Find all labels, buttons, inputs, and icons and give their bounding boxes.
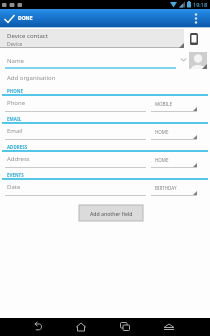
button[interactable] bbox=[160, 318, 178, 336]
button[interactable] bbox=[29, 318, 47, 336]
staticText: BIRTHDAY bbox=[155, 185, 177, 191]
staticText: MOBILE bbox=[155, 101, 172, 107]
staticText: Add another field bbox=[90, 210, 133, 217]
button[interactable]: BIRTHDAY bbox=[151, 182, 197, 196]
staticText: ADDRESS bbox=[7, 144, 28, 150]
staticText: DONE bbox=[18, 15, 33, 22]
button[interactable]: Address bbox=[7, 155, 30, 163]
staticText: 19:18 bbox=[193, 1, 208, 8]
staticText: HOME bbox=[155, 157, 169, 163]
button[interactable] bbox=[190, 33, 198, 45]
button[interactable]: Email bbox=[7, 127, 23, 135]
staticText: Device bbox=[7, 41, 23, 48]
button[interactable]: Add organisation bbox=[7, 74, 56, 82]
button[interactable]: HOME bbox=[151, 154, 197, 168]
button[interactable]: DONE bbox=[0, 9, 60, 28]
button[interactable] bbox=[188, 9, 210, 28]
staticText: Device contact bbox=[7, 32, 48, 40]
button[interactable]: Add another field bbox=[79, 205, 143, 221]
button[interactable]: MOBILE bbox=[151, 98, 197, 112]
button[interactable]: Device contact bbox=[0, 29, 184, 48]
button[interactable] bbox=[72, 318, 90, 336]
button[interactable]: HOME bbox=[151, 126, 197, 140]
button[interactable]: Phone bbox=[7, 99, 26, 107]
button[interactable] bbox=[189, 52, 207, 69]
button[interactable] bbox=[116, 318, 134, 336]
staticText: PHONE bbox=[7, 88, 23, 94]
staticText: Name bbox=[7, 57, 24, 65]
staticText: EVENTS bbox=[7, 172, 24, 178]
staticText: EMAIL bbox=[7, 116, 22, 122]
staticText: HOME bbox=[155, 129, 169, 135]
button[interactable]: Date bbox=[7, 183, 21, 191]
